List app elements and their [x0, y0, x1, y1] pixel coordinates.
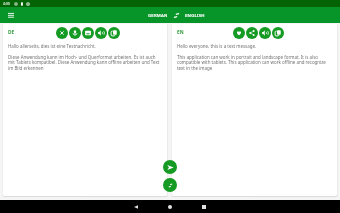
- button[interactable]: Copy text: [272, 27, 284, 39]
- staticText: DE: [8, 29, 15, 36]
- staticText: Hello everyone, this is a test message.: [177, 43, 257, 49]
- button[interactable]: Swap translation direction: [172, 11, 181, 20]
- button[interactable]: Add to favourites: [233, 27, 245, 39]
- button[interactable]: Speak text: [95, 27, 107, 39]
- button[interactable]: Back: [119, 200, 153, 213]
- staticText: This application can work in portrait an…: [177, 54, 331, 72]
- button[interactable]: Open navigation menu: [5, 9, 17, 21]
- button[interactable]: Share: [246, 27, 258, 39]
- button[interactable]: Speak text: [259, 27, 271, 39]
- button[interactable]: GERMAN: [146, 10, 170, 20]
- button[interactable]: Recent apps: [187, 200, 221, 213]
- button[interactable]: Copy text: [108, 27, 120, 39]
- staticText: 4:30: [3, 1, 10, 6]
- staticText: Hallo allerseits, dies ist eine Testnach…: [8, 43, 96, 49]
- button[interactable]: Clear text: [56, 27, 68, 39]
- button[interactable]: Keyboard: [82, 27, 94, 39]
- staticText: EN: [177, 29, 184, 36]
- button[interactable]: ENGLISH: [183, 10, 207, 20]
- staticText: ENGLISH: [185, 12, 205, 18]
- staticText: GERMAN: [148, 12, 168, 18]
- button[interactable]: Home: [153, 200, 187, 213]
- button[interactable]: Voice input: [69, 27, 81, 39]
- button[interactable]: Translate: [163, 160, 177, 174]
- staticText: Diese Anwendung kann im Hoch- und Querfo…: [8, 54, 161, 72]
- button[interactable]: Swap languages: [163, 178, 177, 192]
